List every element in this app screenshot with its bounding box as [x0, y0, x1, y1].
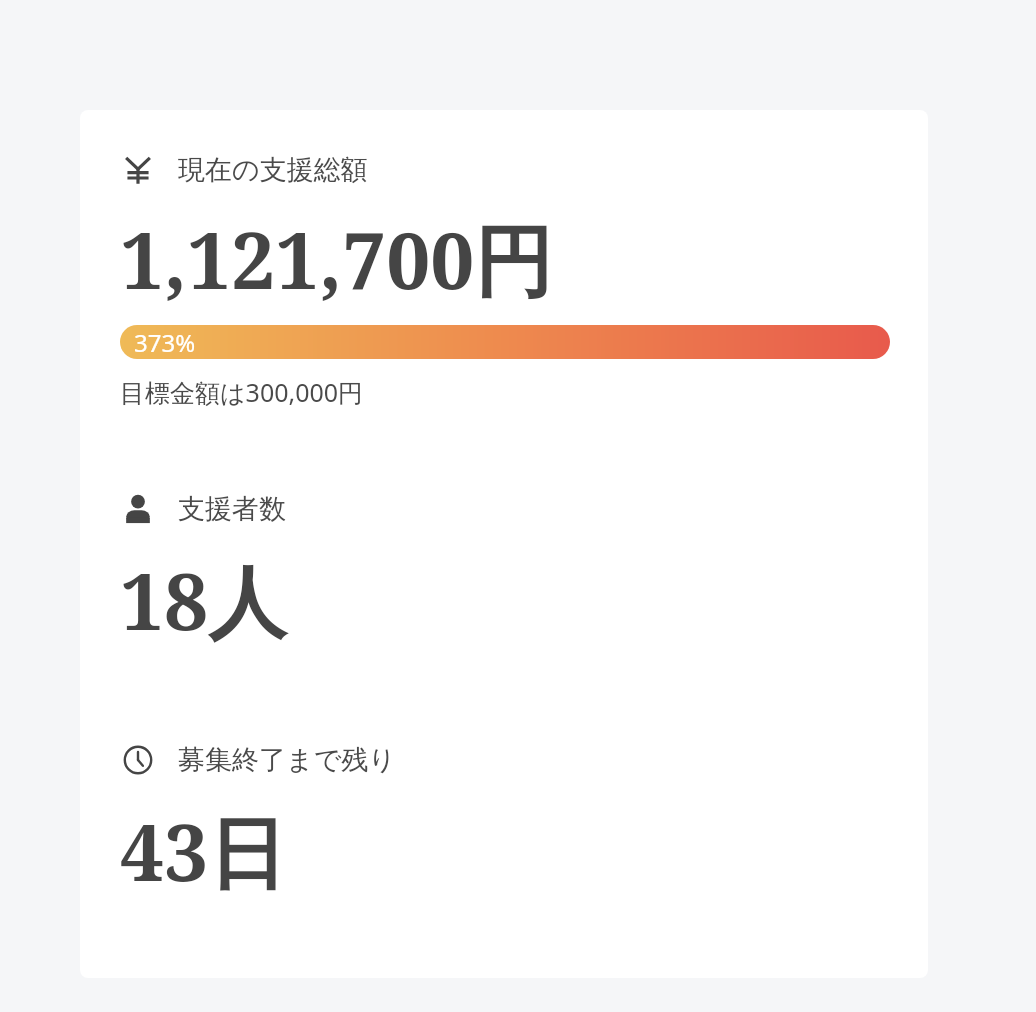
button[interactable]: Yen [80, 110, 928, 978]
other: Time remaining [120, 742, 156, 778]
staticText: 43日 [120, 798, 287, 905]
button[interactable]: 373% [120, 325, 890, 359]
staticText: 1,121,700円 [120, 206, 553, 313]
button[interactable]: Yen [120, 148, 368, 192]
staticText: 目標金額は300,000円 [120, 375, 364, 409]
staticText: 募集終了まで残り [178, 743, 396, 777]
staticText: 支援者数 [178, 492, 286, 526]
other: Supporters [120, 491, 156, 527]
staticText: 現在の支援総額 [178, 153, 368, 187]
staticText: 373% [134, 326, 196, 359]
button[interactable]: Supporters [120, 487, 286, 531]
staticText: 18人 [120, 547, 287, 654]
button[interactable]: Time remaining [120, 738, 396, 782]
other: Yen [120, 152, 156, 188]
